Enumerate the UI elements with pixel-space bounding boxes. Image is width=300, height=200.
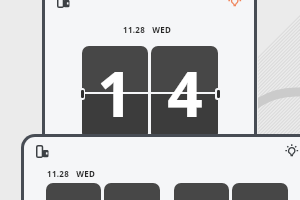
staticText: 11.28 WED [47, 168, 96, 179]
button[interactable]: Devices [36, 145, 49, 158]
button[interactable]: 1 [82, 46, 148, 140]
staticText: 4 [167, 51, 203, 135]
button[interactable]: Brightness [285, 145, 298, 158]
button[interactable]: 2 [174, 183, 229, 200]
staticText: 11.28 WED [123, 24, 172, 35]
button[interactable]: Devices [57, 0, 70, 8]
staticText: 1 [97, 51, 133, 135]
button[interactable]: 4 [151, 46, 218, 140]
button[interactable]: Brightness [228, 0, 241, 8]
button[interactable]: 1 [46, 183, 101, 200]
button[interactable]: 8 [232, 183, 288, 200]
button[interactable]: 1 [104, 183, 160, 200]
